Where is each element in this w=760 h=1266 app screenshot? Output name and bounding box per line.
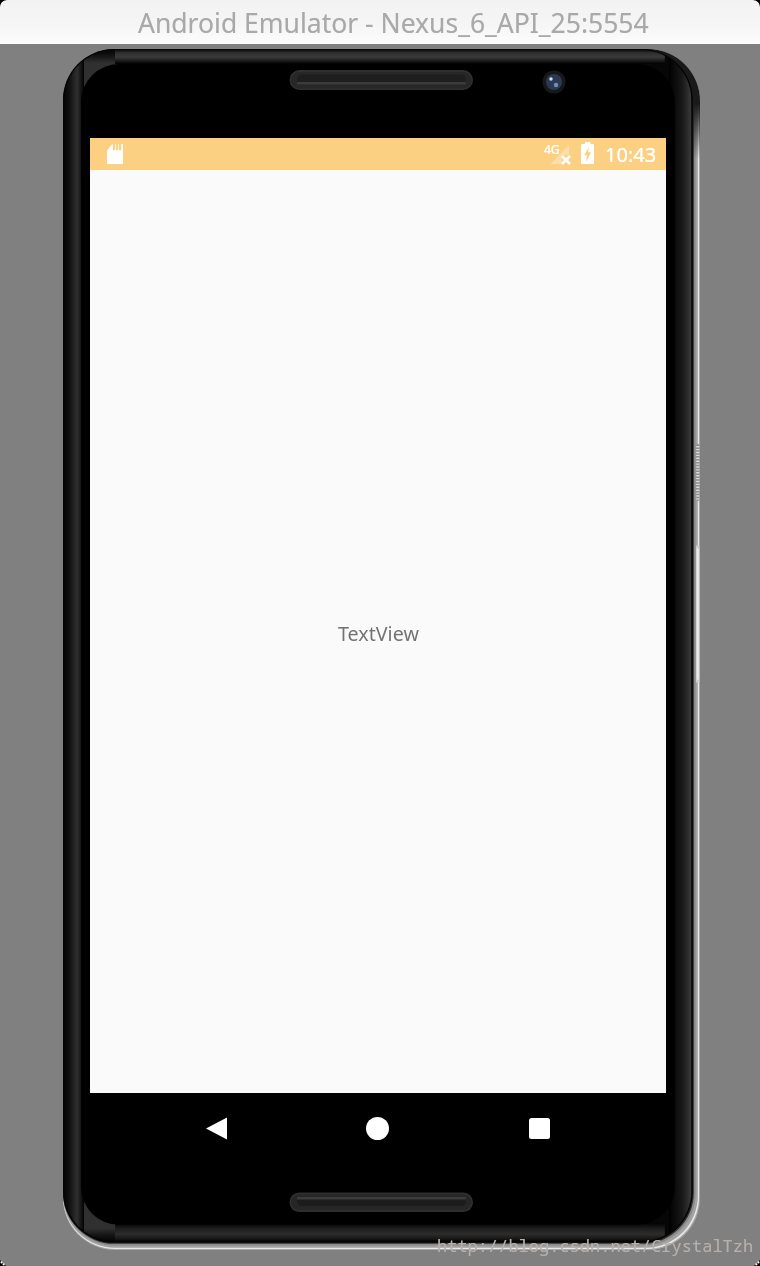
staticText: 10:43 (605, 141, 657, 168)
staticText: TextView (338, 620, 419, 647)
button[interactable]: Home (342, 1103, 412, 1153)
staticText: Android Emulator - Nexus_6_API_25:5554 (138, 5, 649, 41)
button[interactable]: Back (181, 1103, 251, 1153)
staticText: 4G (544, 141, 560, 157)
staticText: http://blog.csdn.net/CrystalTzh (437, 1234, 754, 1257)
button[interactable]: Recents (504, 1103, 574, 1153)
